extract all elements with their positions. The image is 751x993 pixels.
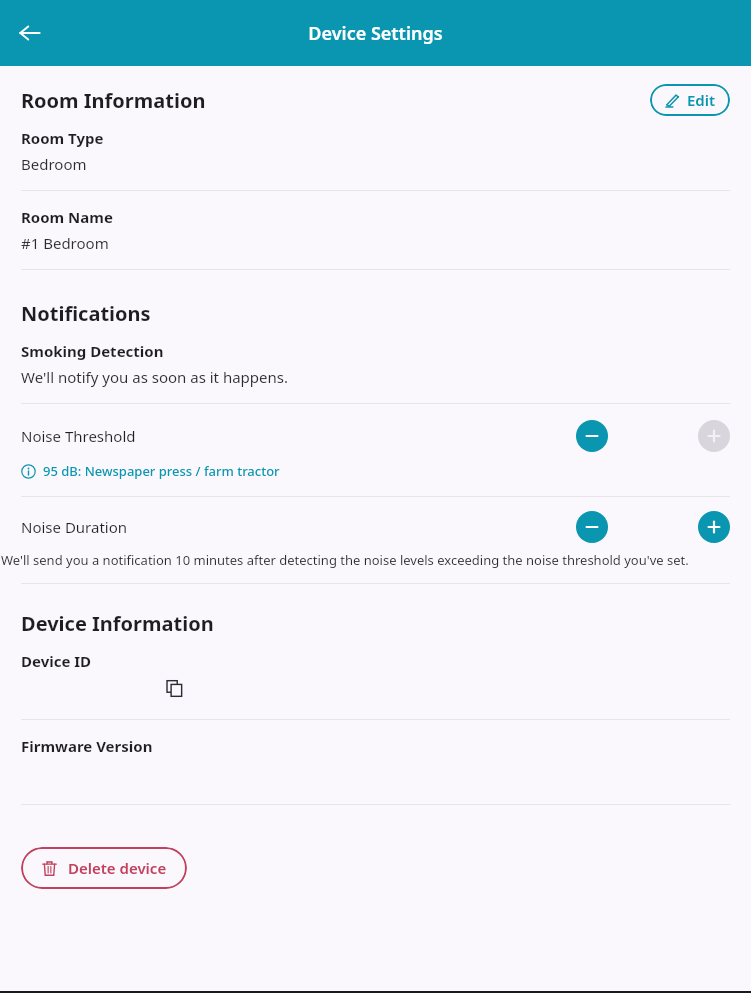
staticText: Room Information: [21, 87, 206, 114]
staticText: Noise Duration: [21, 517, 128, 537]
button[interactable]: Delete device: [21, 847, 187, 889]
staticText: Room Name: [21, 207, 113, 227]
staticText: Room Type: [21, 128, 104, 148]
staticText: 95 dB: Newspaper press / farm tractor: [43, 462, 280, 480]
button[interactable]: Increase Noise Duration: [698, 511, 730, 543]
staticText: #1 Bedroom: [21, 233, 109, 253]
staticText: Notifications: [21, 300, 151, 327]
button[interactable]: Decrease Noise Threshold: [576, 420, 608, 452]
button[interactable]: Increase Noise Threshold: [698, 420, 730, 452]
staticText: Smoking Detection: [21, 341, 164, 361]
button[interactable]: Edit: [650, 84, 730, 116]
staticText: Device Settings: [308, 21, 443, 46]
staticText: Delete device: [68, 858, 167, 878]
staticText: We'll notify you as soon as it happens.: [21, 367, 288, 387]
staticText: Bedroom: [21, 154, 87, 174]
staticText: Device Information: [21, 610, 214, 637]
button[interactable]: Back: [8, 11, 52, 55]
staticText: Noise Threshold: [21, 426, 136, 446]
staticText: Firmware Version: [21, 736, 153, 756]
staticText: Edit: [687, 90, 716, 110]
button[interactable]: Decrease Noise Duration: [576, 511, 608, 543]
button[interactable]: Copy device ID: [161, 675, 187, 701]
staticText: We'll send you a notification 10 minutes…: [1, 551, 689, 569]
staticText: Device ID: [21, 651, 92, 671]
